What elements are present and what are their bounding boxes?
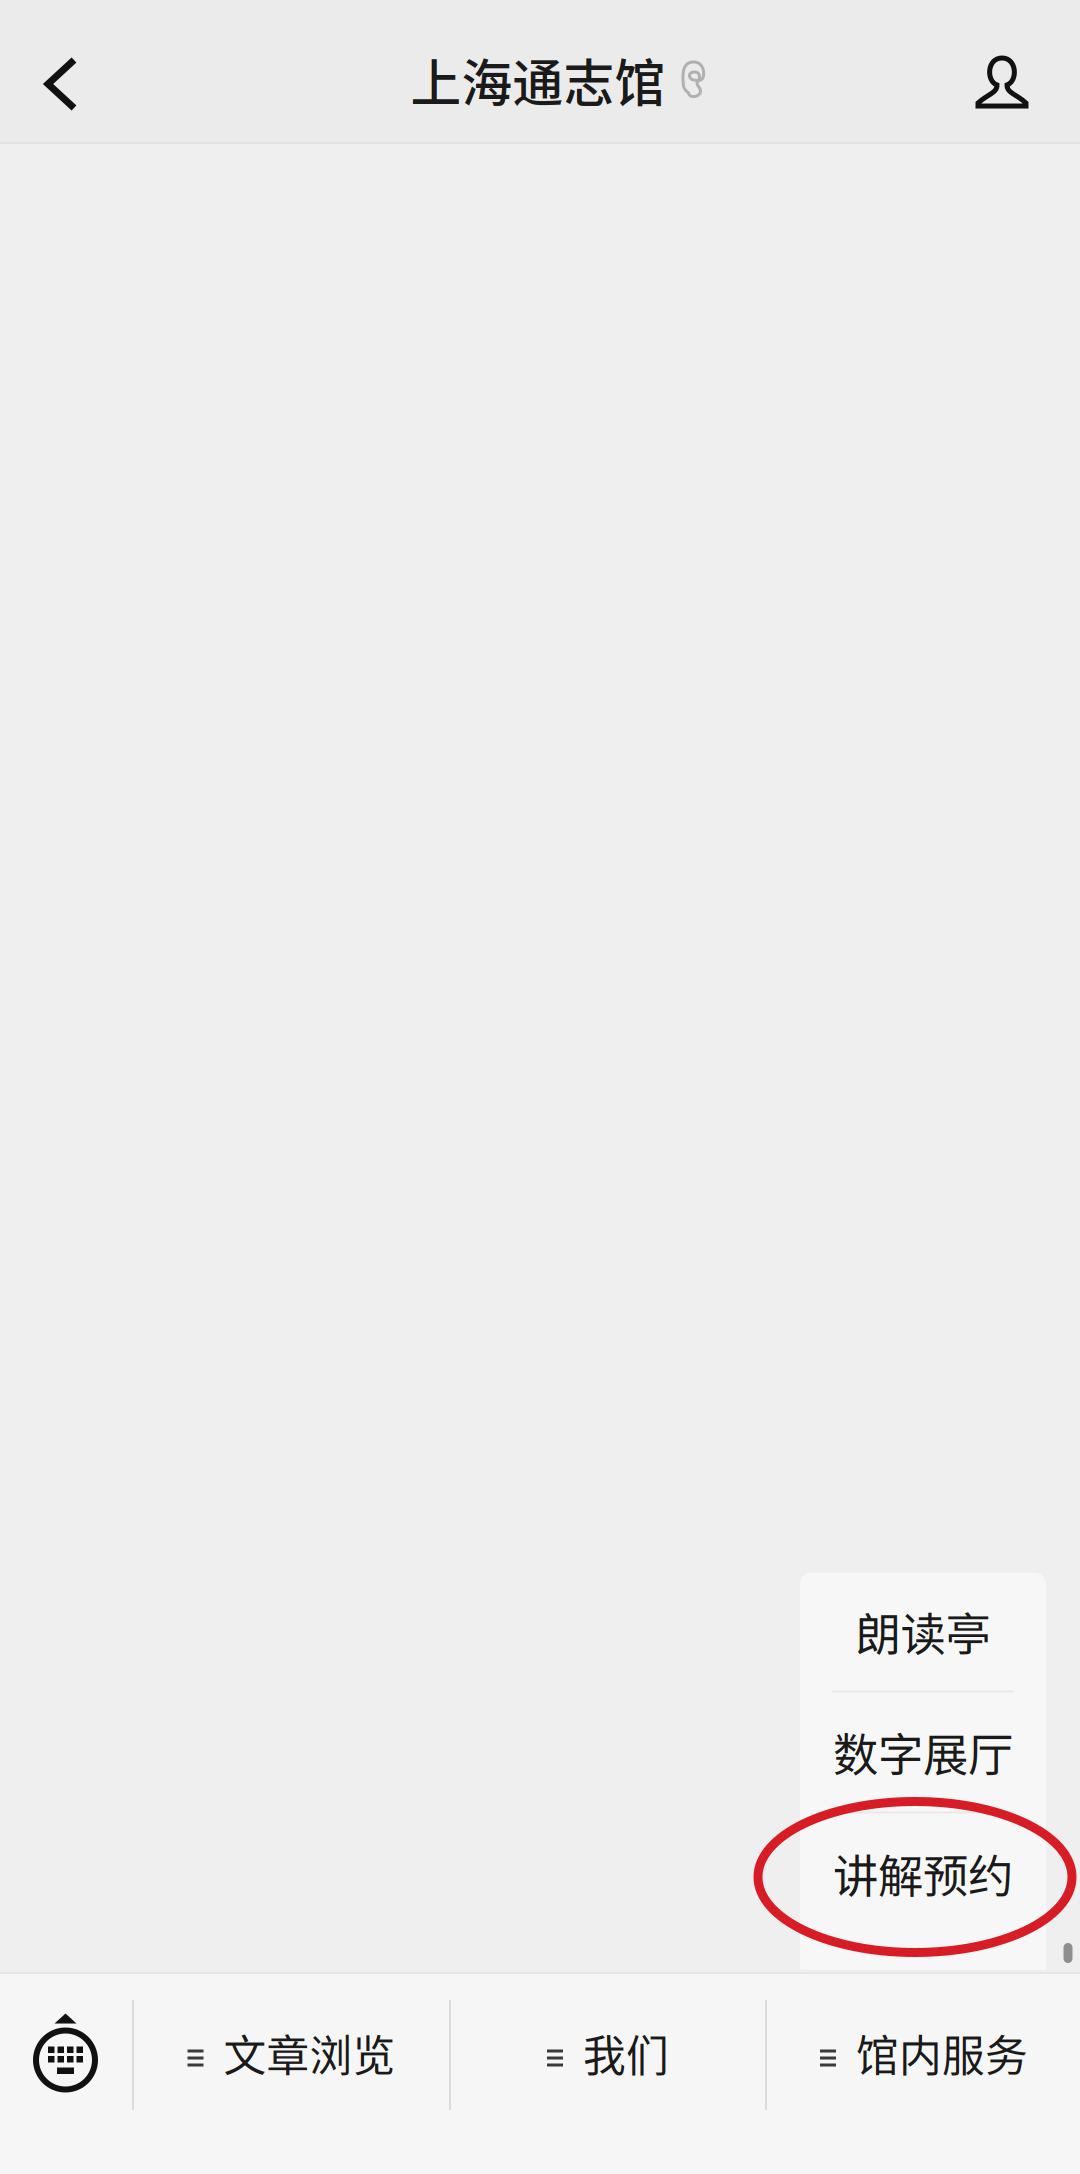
staticText: 数字展厅: [833, 1719, 1013, 1785]
button[interactable]: 我们: [451, 1974, 765, 2110]
button[interactable]: Profile: [947, 11, 1057, 153]
button[interactable]: 数字展厅: [800, 1692, 1046, 1811]
staticText: 朗读亭: [855, 1599, 990, 1664]
staticText: 馆内服务: [856, 2022, 1028, 2084]
button[interactable]: 文章浏览: [134, 1974, 449, 2110]
staticText: 我们: [583, 2022, 669, 2084]
button[interactable]: Back: [2, 13, 120, 155]
button[interactable]: 讲解预约: [800, 1813, 1046, 1933]
staticText: 讲解预约: [833, 1841, 1013, 1906]
button[interactable]: 馆内服务: [767, 1974, 1080, 2110]
button[interactable]: 朗读亭: [800, 1572, 1046, 1690]
staticText: 文章浏览: [223, 2022, 395, 2084]
button[interactable]: Keyboard: [0, 1974, 132, 2110]
staticText: 上海通志馆: [410, 43, 665, 117]
